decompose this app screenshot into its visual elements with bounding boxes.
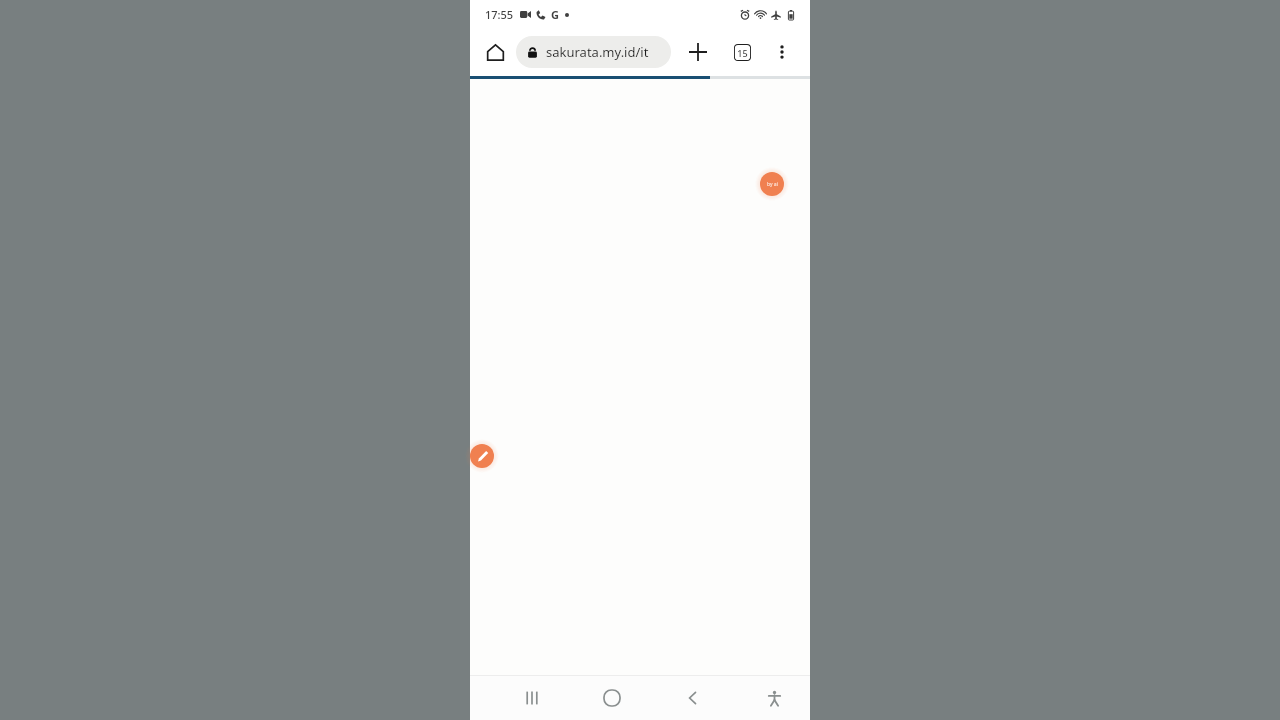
staticText: by ai bbox=[767, 181, 778, 188]
staticText: G bbox=[551, 7, 559, 22]
button[interactable]: Tabs: 15 bbox=[725, 35, 759, 69]
button[interactable]: More options bbox=[765, 35, 799, 69]
button[interactable]: Back bbox=[671, 676, 715, 720]
button[interactable]: Recent apps bbox=[510, 676, 554, 720]
button[interactable]: Edit bbox=[470, 444, 494, 468]
button[interactable]: Action bbox=[760, 172, 784, 196]
staticText: 15 bbox=[737, 47, 748, 59]
button[interactable]: Accessibility bbox=[752, 676, 796, 720]
button[interactable]: Home bbox=[590, 676, 634, 720]
button[interactable]: Home bbox=[478, 35, 512, 69]
button[interactable]: New tab bbox=[681, 35, 715, 69]
staticText: sakurata.my.id/it bbox=[546, 43, 649, 61]
button[interactable]: sakurata.my.id/it bbox=[516, 36, 671, 68]
staticText: 17:55 bbox=[485, 7, 514, 22]
